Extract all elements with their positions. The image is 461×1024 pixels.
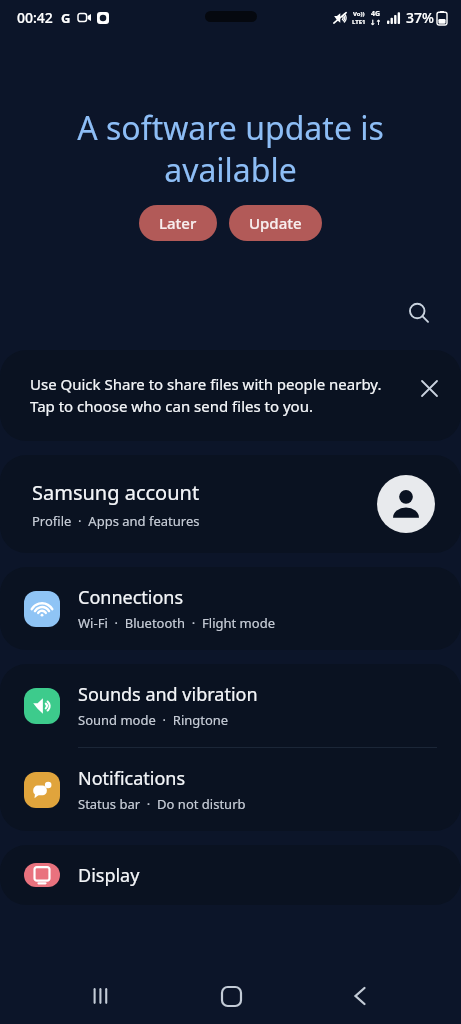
staticText: LTE1 [352,18,366,26]
button[interactable]: Sounds and vibration [0,664,461,747]
button[interactable]: Use Quick Share to share files with peop… [0,350,461,441]
staticText: Display [78,863,140,887]
staticText: 4G [371,9,381,19]
staticText: Vo)) [353,10,365,18]
button[interactable]: Display [0,845,461,905]
button[interactable]: Recent apps [73,968,129,1024]
button[interactable]: Update [229,205,322,241]
staticText: G [61,9,71,27]
staticText: Profile · Apps and features [32,512,200,530]
staticText: Sound mode · Ringtone [78,711,229,729]
staticText: ↓↑ [370,19,382,27]
staticText: Samsung account [32,479,200,506]
staticText: 00:42 [17,8,53,27]
button[interactable]: Samsung account [0,455,461,553]
staticText: 37% [406,8,434,27]
staticText: Later [159,213,197,233]
staticText: Connections [78,585,184,610]
staticText: Notifications [78,766,186,791]
button[interactable]: Later [139,205,217,241]
staticText: Wi-Fi · Bluetooth · Flight mode [78,614,275,632]
button[interactable]: Dismiss [415,374,443,402]
staticText: Status bar · Do not disturb [78,795,246,813]
staticText: A software update is available [26,106,435,191]
button[interactable]: Back [332,968,388,1024]
button[interactable]: Notifications [0,748,461,831]
staticText: Sounds and vibration [78,682,258,707]
staticText: Use Quick Share to share files with peop… [30,374,403,417]
button[interactable]: Connections [0,567,461,650]
button[interactable]: Home [203,968,259,1024]
button[interactable]: Search [399,293,439,333]
staticText: Update [249,213,302,233]
